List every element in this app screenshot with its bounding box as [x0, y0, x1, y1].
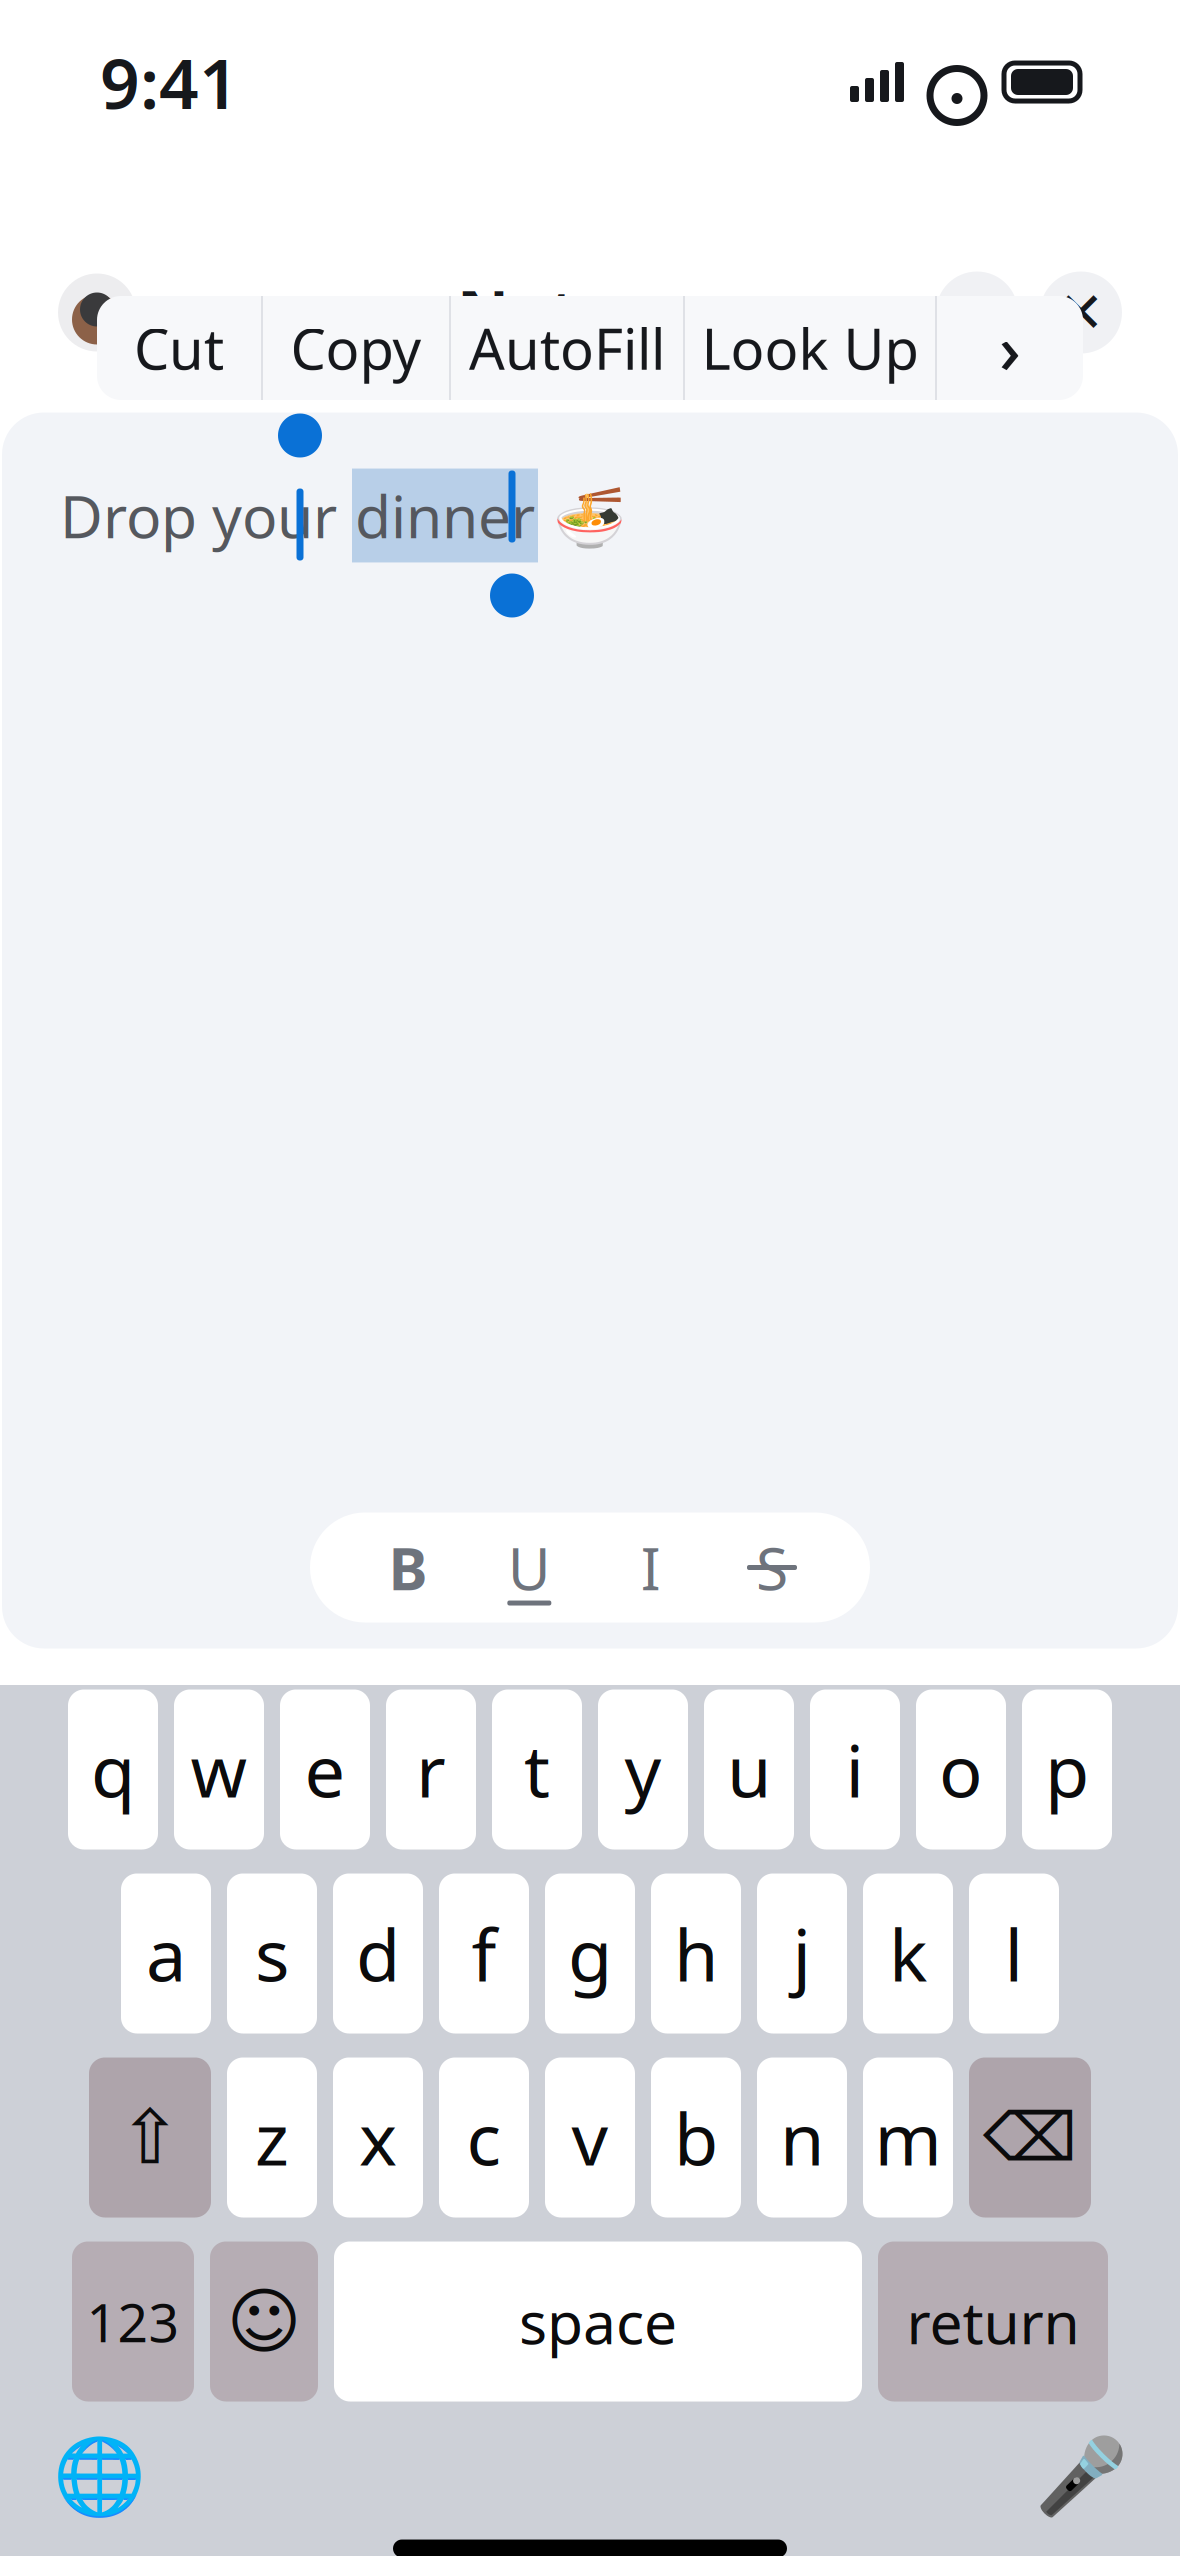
- staticText: r: [416, 1722, 446, 1817]
- button[interactable]: t: [492, 1689, 582, 1849]
- staticText: ✕: [1057, 281, 1104, 344]
- staticText: space: [519, 2282, 677, 2360]
- button[interactable]: m: [863, 2057, 953, 2217]
- staticText: ☺: [226, 2281, 301, 2362]
- button[interactable]: Change keyboard: [44, 2421, 154, 2531]
- staticText: x: [359, 2090, 397, 2185]
- staticText: 123: [86, 2286, 179, 2357]
- button[interactable]: n: [757, 2057, 847, 2217]
- staticText: Copy: [290, 311, 421, 385]
- button[interactable]: More actions: [937, 296, 1083, 400]
- button[interactable]: Delete: [969, 2057, 1091, 2217]
- staticText: d: [356, 1906, 400, 2001]
- staticText: u: [727, 1722, 771, 1817]
- staticText: AutoFill: [469, 311, 665, 385]
- button[interactable]: r: [386, 1689, 476, 1849]
- staticText: I: [641, 1528, 661, 1606]
- button[interactable]: U: [481, 1529, 577, 1605]
- button[interactable]: x: [333, 2057, 423, 2217]
- staticText: b: [674, 2090, 718, 2185]
- button[interactable]: return: [878, 2241, 1108, 2401]
- staticText: 🍜: [538, 476, 626, 554]
- button[interactable]: o: [916, 1689, 1006, 1849]
- button[interactable]: More options: [936, 271, 1018, 353]
- button[interactable]: S: [724, 1529, 820, 1605]
- button[interactable]: a: [121, 1873, 211, 2033]
- button[interactable]: b: [651, 2057, 741, 2217]
- staticText: f: [471, 1906, 496, 2001]
- button[interactable]: j: [757, 1873, 847, 2033]
- button[interactable]: Look Up: [685, 296, 935, 400]
- button[interactable]: l: [969, 1873, 1059, 2033]
- button[interactable]: i: [810, 1689, 900, 1849]
- staticText: q: [91, 1722, 135, 1817]
- button[interactable]: u: [704, 1689, 794, 1849]
- button[interactable]: Copy: [263, 296, 449, 400]
- button[interactable]: space: [334, 2241, 862, 2401]
- button[interactable]: p: [1022, 1689, 1112, 1849]
- staticText: c: [466, 2090, 501, 2185]
- staticText: k: [889, 1906, 927, 2001]
- staticText: y: [624, 1722, 661, 1817]
- button[interactable]: h: [651, 1873, 741, 2033]
- staticText: Note: [457, 270, 615, 355]
- button[interactable]: v: [545, 2057, 635, 2217]
- button[interactable]: 123: [72, 2241, 194, 2401]
- staticText: z: [255, 2090, 289, 2185]
- staticText: 🌐: [52, 2434, 145, 2519]
- staticText: ⌫: [983, 2100, 1077, 2175]
- staticText: m: [874, 2090, 941, 2185]
- button[interactable]: z: [227, 2057, 317, 2217]
- staticText: B: [388, 1528, 427, 1606]
- staticText: U: [508, 1528, 551, 1606]
- staticText: l: [1004, 1906, 1023, 2001]
- staticText: t: [524, 1722, 550, 1817]
- staticText: dinner: [355, 476, 535, 554]
- button[interactable]: y: [598, 1689, 688, 1849]
- staticText: 9:41: [100, 36, 239, 128]
- staticText: i: [845, 1722, 864, 1817]
- staticText: w: [190, 1722, 247, 1817]
- staticText: Drop your: [60, 476, 352, 554]
- button[interactable]: B: [360, 1529, 456, 1605]
- button[interactable]: Dictate: [1026, 2421, 1136, 2531]
- staticText: return: [906, 2282, 1079, 2360]
- staticText: j: [792, 1906, 811, 2001]
- staticText: o: [939, 1722, 983, 1817]
- staticText: v: [571, 2090, 608, 2185]
- button[interactable]: g: [545, 1873, 635, 2033]
- staticText: Cut: [134, 311, 224, 385]
- staticText: n: [780, 2090, 824, 2185]
- staticText: S: [756, 1528, 788, 1606]
- button[interactable]: e: [280, 1689, 370, 1849]
- staticText: a: [146, 1906, 186, 2001]
- staticText: g: [568, 1906, 612, 2001]
- button[interactable]: Close: [1040, 271, 1122, 353]
- staticText: e: [304, 1722, 345, 1817]
- staticText: ›: [999, 304, 1021, 392]
- button[interactable]: k: [863, 1873, 953, 2033]
- button[interactable]: f: [439, 1873, 529, 2033]
- button[interactable]: d: [333, 1873, 423, 2033]
- staticText: h: [674, 1906, 718, 2001]
- button[interactable]: AutoFill: [451, 296, 683, 400]
- staticText: Look Up: [701, 311, 918, 385]
- staticText: ⇧: [118, 2095, 181, 2180]
- button[interactable]: Emoji: [210, 2241, 318, 2401]
- button[interactable]: w: [174, 1689, 264, 1849]
- staticText: p: [1045, 1722, 1089, 1817]
- staticText: 🎤: [1034, 2434, 1127, 2519]
- button[interactable]: c: [439, 2057, 529, 2217]
- button[interactable]: Shift: [89, 2057, 211, 2217]
- button[interactable]: Cut: [97, 296, 261, 400]
- button[interactable]: q: [68, 1689, 158, 1849]
- button[interactable]: s: [227, 1873, 317, 2033]
- staticText: s: [255, 1906, 289, 2001]
- button[interactable]: I: [603, 1529, 699, 1605]
